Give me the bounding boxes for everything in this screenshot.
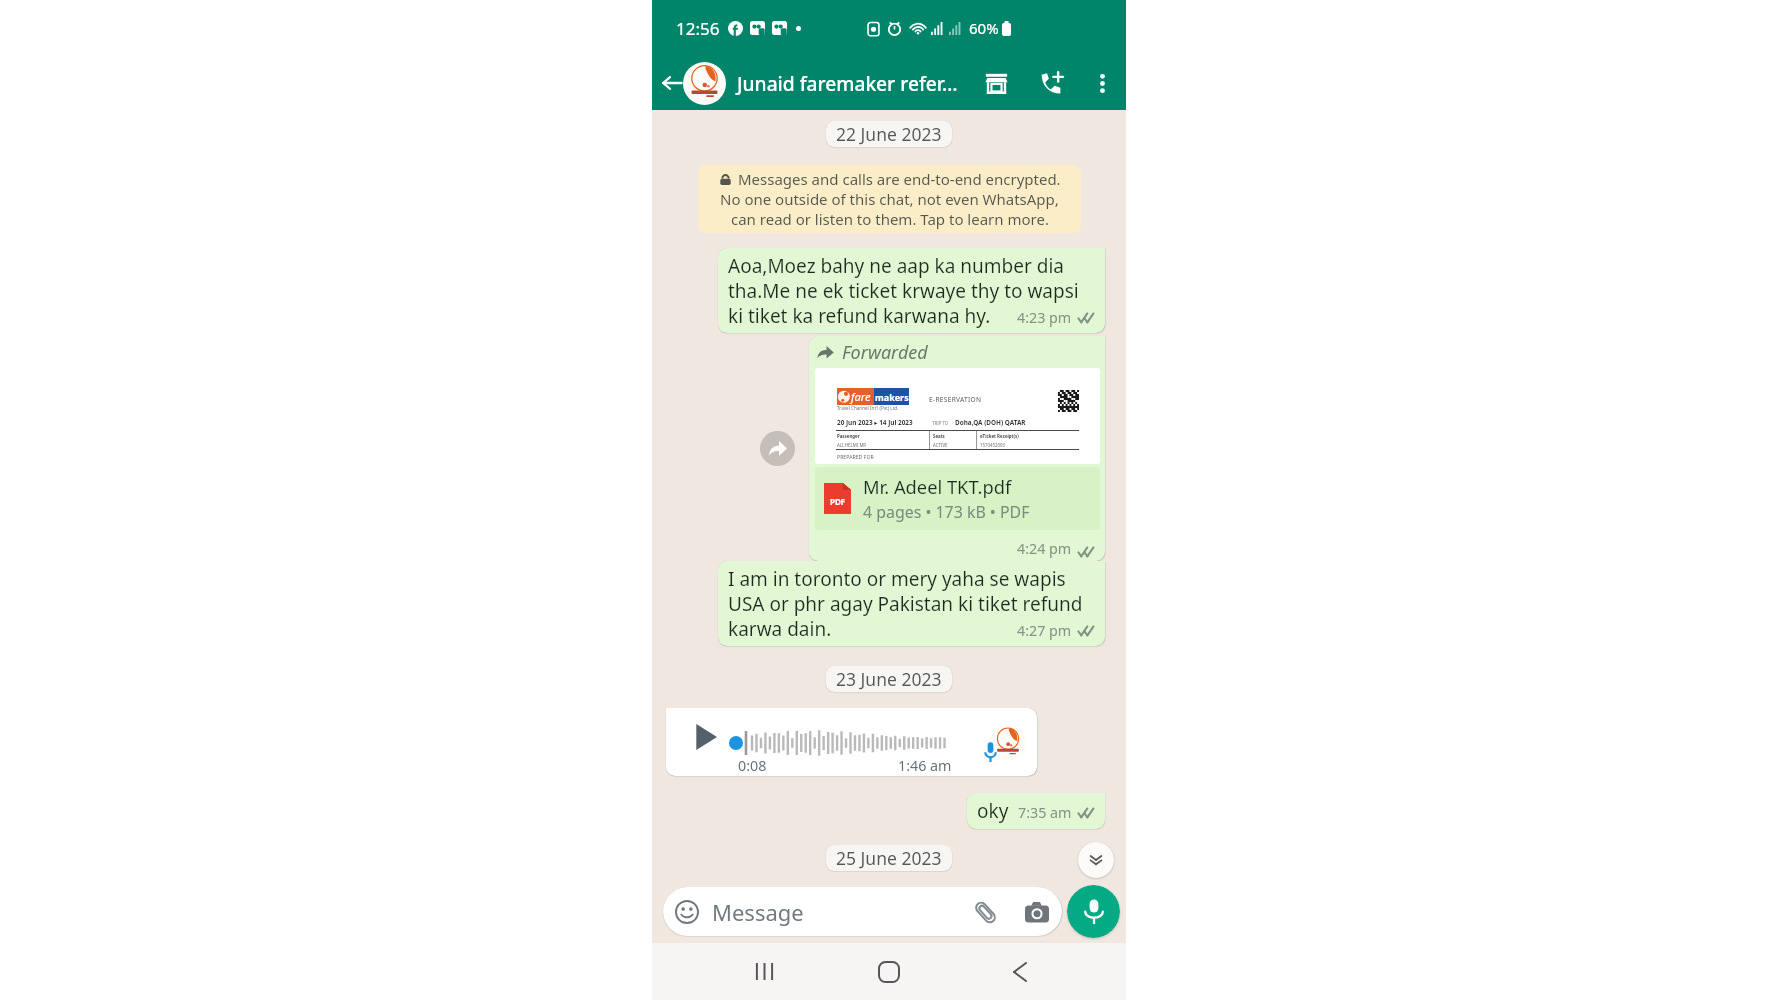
button[interactable]: More options [1089,70,1115,96]
button[interactable]: Camera [1022,897,1052,927]
staticText: makers [875,391,909,403]
button[interactable]: Home [853,943,925,1000]
button[interactable]: Forward [760,431,795,466]
staticText: oky [977,798,1009,824]
button[interactable]: Scroll to bottom [1078,842,1114,878]
staticText: fare [851,389,874,404]
button[interactable]: Message [663,887,1062,936]
button[interactable]: Messages and calls are end-to-end encryp… [698,165,1081,233]
staticText: Doha,QA (DOH) QATAR [955,418,1026,427]
button[interactable]: Aoa,Moez bahy ne aap ka number dia tha.M… [718,248,1105,333]
staticText: 4:23 pm [1017,308,1072,327]
button[interactable]: Recents [728,943,800,1000]
button[interactable]: Forwarded [809,336,1105,561]
staticText: TRIP TO [932,420,949,426]
staticText: E-RESERVATION [929,395,982,404]
staticText: PDF [830,496,846,507]
staticText: 1:46 am [898,756,952,775]
button[interactable]: 0:08 [666,708,1037,776]
staticText: eTicket Receipt(s) [980,433,1019,439]
staticText: 60% [969,18,999,38]
staticText: 1570452093 [980,442,1006,448]
staticText: Travel Channel Int'l (Pvt) Ltd. [837,405,899,411]
staticText: PREPARED FOR [837,453,874,460]
staticText: can read or listen to them. Tap to learn… [731,209,1049,229]
staticText: 25 June 2023 [836,846,942,870]
button[interactable]: I am in toronto or mery yaha se wapis US… [718,561,1105,646]
staticText: 4:27 pm [1017,621,1072,640]
staticText: Message [712,897,804,927]
staticText: I am in toronto or mery yaha se wapis US… [728,566,1096,642]
staticText: 23 June 2023 [836,667,942,691]
staticText: Aoa,Moez bahy ne aap ka number dia tha.M… [728,253,1096,329]
staticText: 20 Jun 2023 ▸ 14 Jul 2023 [837,418,913,427]
staticText: 0:08 [738,756,767,775]
button[interactable]: Attach [970,897,1000,927]
staticText: ALI,HELMI MR [837,442,867,448]
button[interactable]: Back [656,67,688,99]
staticText: 7:35 am [1018,803,1072,822]
staticText: 12:56 [676,17,720,40]
button[interactable]: oky [967,793,1105,829]
staticText: 4 pages • 173 kB • PDF [863,501,1030,523]
staticText: No one outside of this chat, not even Wh… [720,189,1059,209]
button[interactable]: Voice message [1067,885,1120,938]
button[interactable]: Back [984,943,1056,1000]
button[interactable]: Junaid faremaker refer… [737,70,998,96]
button[interactable]: Add call [1036,67,1068,99]
staticText: Junaid faremaker refer… [737,70,958,96]
staticText: Messages and calls are end-to-end encryp… [738,169,1061,189]
staticText: Forwarded [842,340,928,365]
staticText: 4:24 pm [1017,539,1072,558]
staticText: Passenger [837,433,860,439]
staticText: ACTIVE [933,442,948,448]
button[interactable]: Business profile [980,67,1012,99]
staticText: 22 June 2023 [836,122,942,146]
staticText: Mr. Adeel TKT.pdf [863,474,1012,499]
staticText: Seats [933,433,945,439]
